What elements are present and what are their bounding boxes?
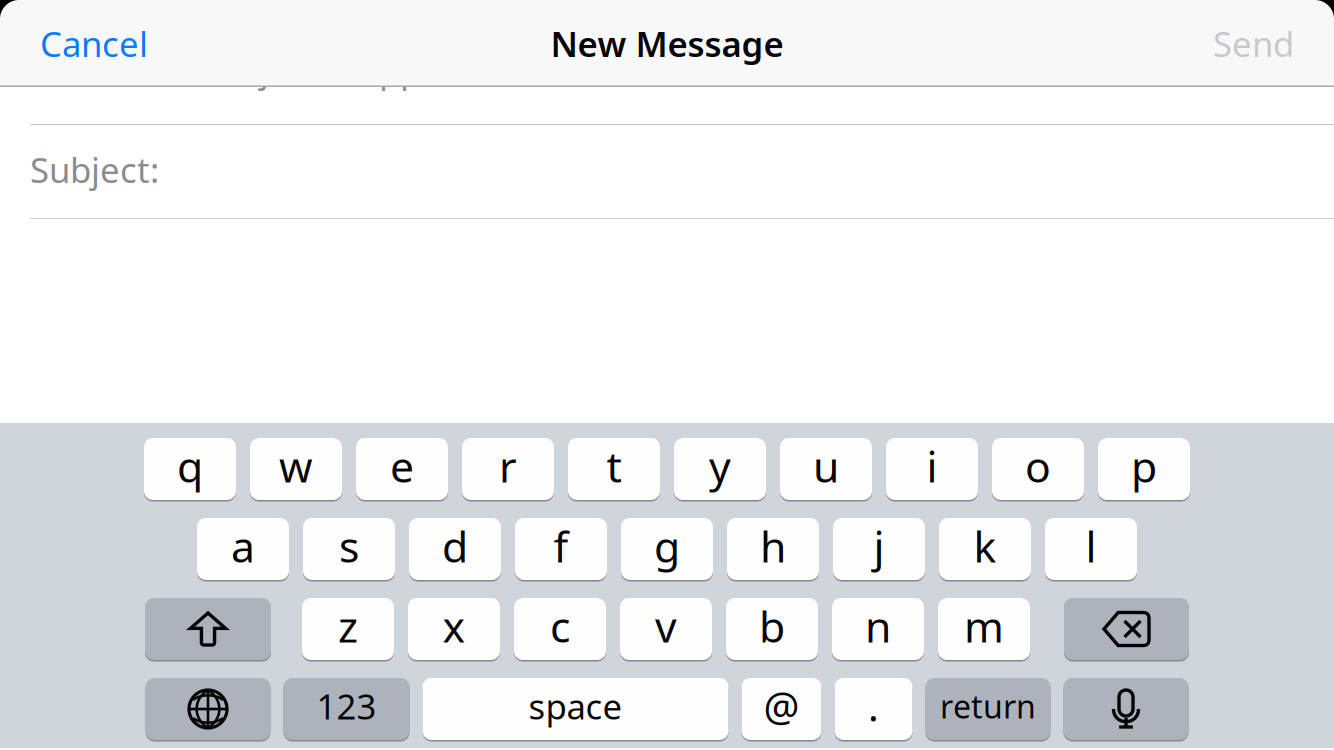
button[interactable]: e	[356, 438, 448, 500]
staticText: y	[709, 438, 731, 494]
button[interactable]: Send	[1193, 4, 1314, 82]
staticText: v	[655, 598, 677, 654]
staticText: u	[813, 438, 839, 494]
staticText: w	[279, 438, 313, 494]
staticText: f	[553, 518, 568, 574]
button[interactable]: Shift	[145, 598, 271, 660]
staticText: n	[865, 598, 891, 654]
button[interactable]: c	[514, 598, 606, 660]
button[interactable]: n	[832, 598, 924, 660]
button[interactable]: u	[780, 438, 872, 500]
button[interactable]: f	[515, 518, 607, 580]
button[interactable]: t	[568, 438, 660, 500]
staticText: k	[973, 518, 996, 574]
staticText: b	[759, 598, 785, 654]
button[interactable]: Delete	[1064, 598, 1189, 660]
staticText: return	[940, 685, 1036, 727]
button[interactable]: a	[197, 518, 289, 580]
staticText: c	[550, 598, 570, 654]
button[interactable]: d	[409, 518, 501, 580]
staticText: @	[763, 679, 799, 732]
button[interactable]: k	[939, 518, 1031, 580]
staticText: t	[606, 438, 621, 494]
button[interactable]: q	[144, 438, 236, 500]
staticText: l	[1085, 518, 1096, 574]
button[interactable]: g	[621, 518, 713, 580]
button[interactable]: i	[886, 438, 978, 500]
staticText: j	[873, 518, 884, 574]
staticText: m	[964, 598, 1004, 654]
staticText: space	[528, 683, 622, 729]
button[interactable]: Cancel	[20, 4, 168, 82]
staticText: Cancel	[40, 20, 148, 66]
staticText: q	[177, 438, 203, 494]
button[interactable]: j	[833, 518, 925, 580]
button[interactable]: Next keyboard	[145, 678, 270, 740]
staticText: x	[442, 598, 465, 654]
button[interactable]: m	[938, 598, 1030, 660]
button[interactable]: 123	[283, 678, 409, 740]
staticText: Send	[1213, 20, 1294, 66]
staticText: Subject:	[30, 146, 159, 192]
button[interactable]: l	[1045, 518, 1137, 580]
button[interactable]: x	[408, 598, 500, 660]
staticText: p	[1131, 438, 1157, 494]
button[interactable]: v	[620, 598, 712, 660]
staticText: a	[231, 518, 255, 574]
button[interactable]: o	[992, 438, 1084, 500]
button[interactable]: w	[250, 438, 342, 500]
button[interactable]: s	[303, 518, 395, 580]
staticText: o	[1025, 438, 1051, 494]
button[interactable]: h	[727, 518, 819, 580]
staticText: .	[868, 679, 879, 732]
button[interactable]: r	[462, 438, 554, 500]
staticText: h	[760, 518, 786, 574]
staticText: Cc/Bcc, From: jane@apple.com	[30, 46, 529, 92]
button[interactable]: @	[741, 678, 821, 740]
button[interactable]: y	[674, 438, 766, 500]
button[interactable]: return	[925, 678, 1050, 740]
staticText: i	[926, 438, 937, 494]
staticText: e	[390, 438, 414, 494]
staticText: r	[499, 438, 517, 494]
staticText: New Message	[550, 20, 783, 66]
button[interactable]: b	[726, 598, 818, 660]
button[interactable]: .	[834, 678, 912, 740]
button[interactable]: space	[422, 678, 728, 740]
staticText: s	[339, 518, 359, 574]
button[interactable]: z	[302, 598, 394, 660]
staticText: g	[654, 518, 680, 574]
staticText: d	[442, 518, 468, 574]
staticText: z	[338, 598, 358, 654]
staticText: 123	[316, 683, 376, 729]
button[interactable]: Dictate	[1063, 678, 1188, 740]
button[interactable]: p	[1098, 438, 1190, 500]
